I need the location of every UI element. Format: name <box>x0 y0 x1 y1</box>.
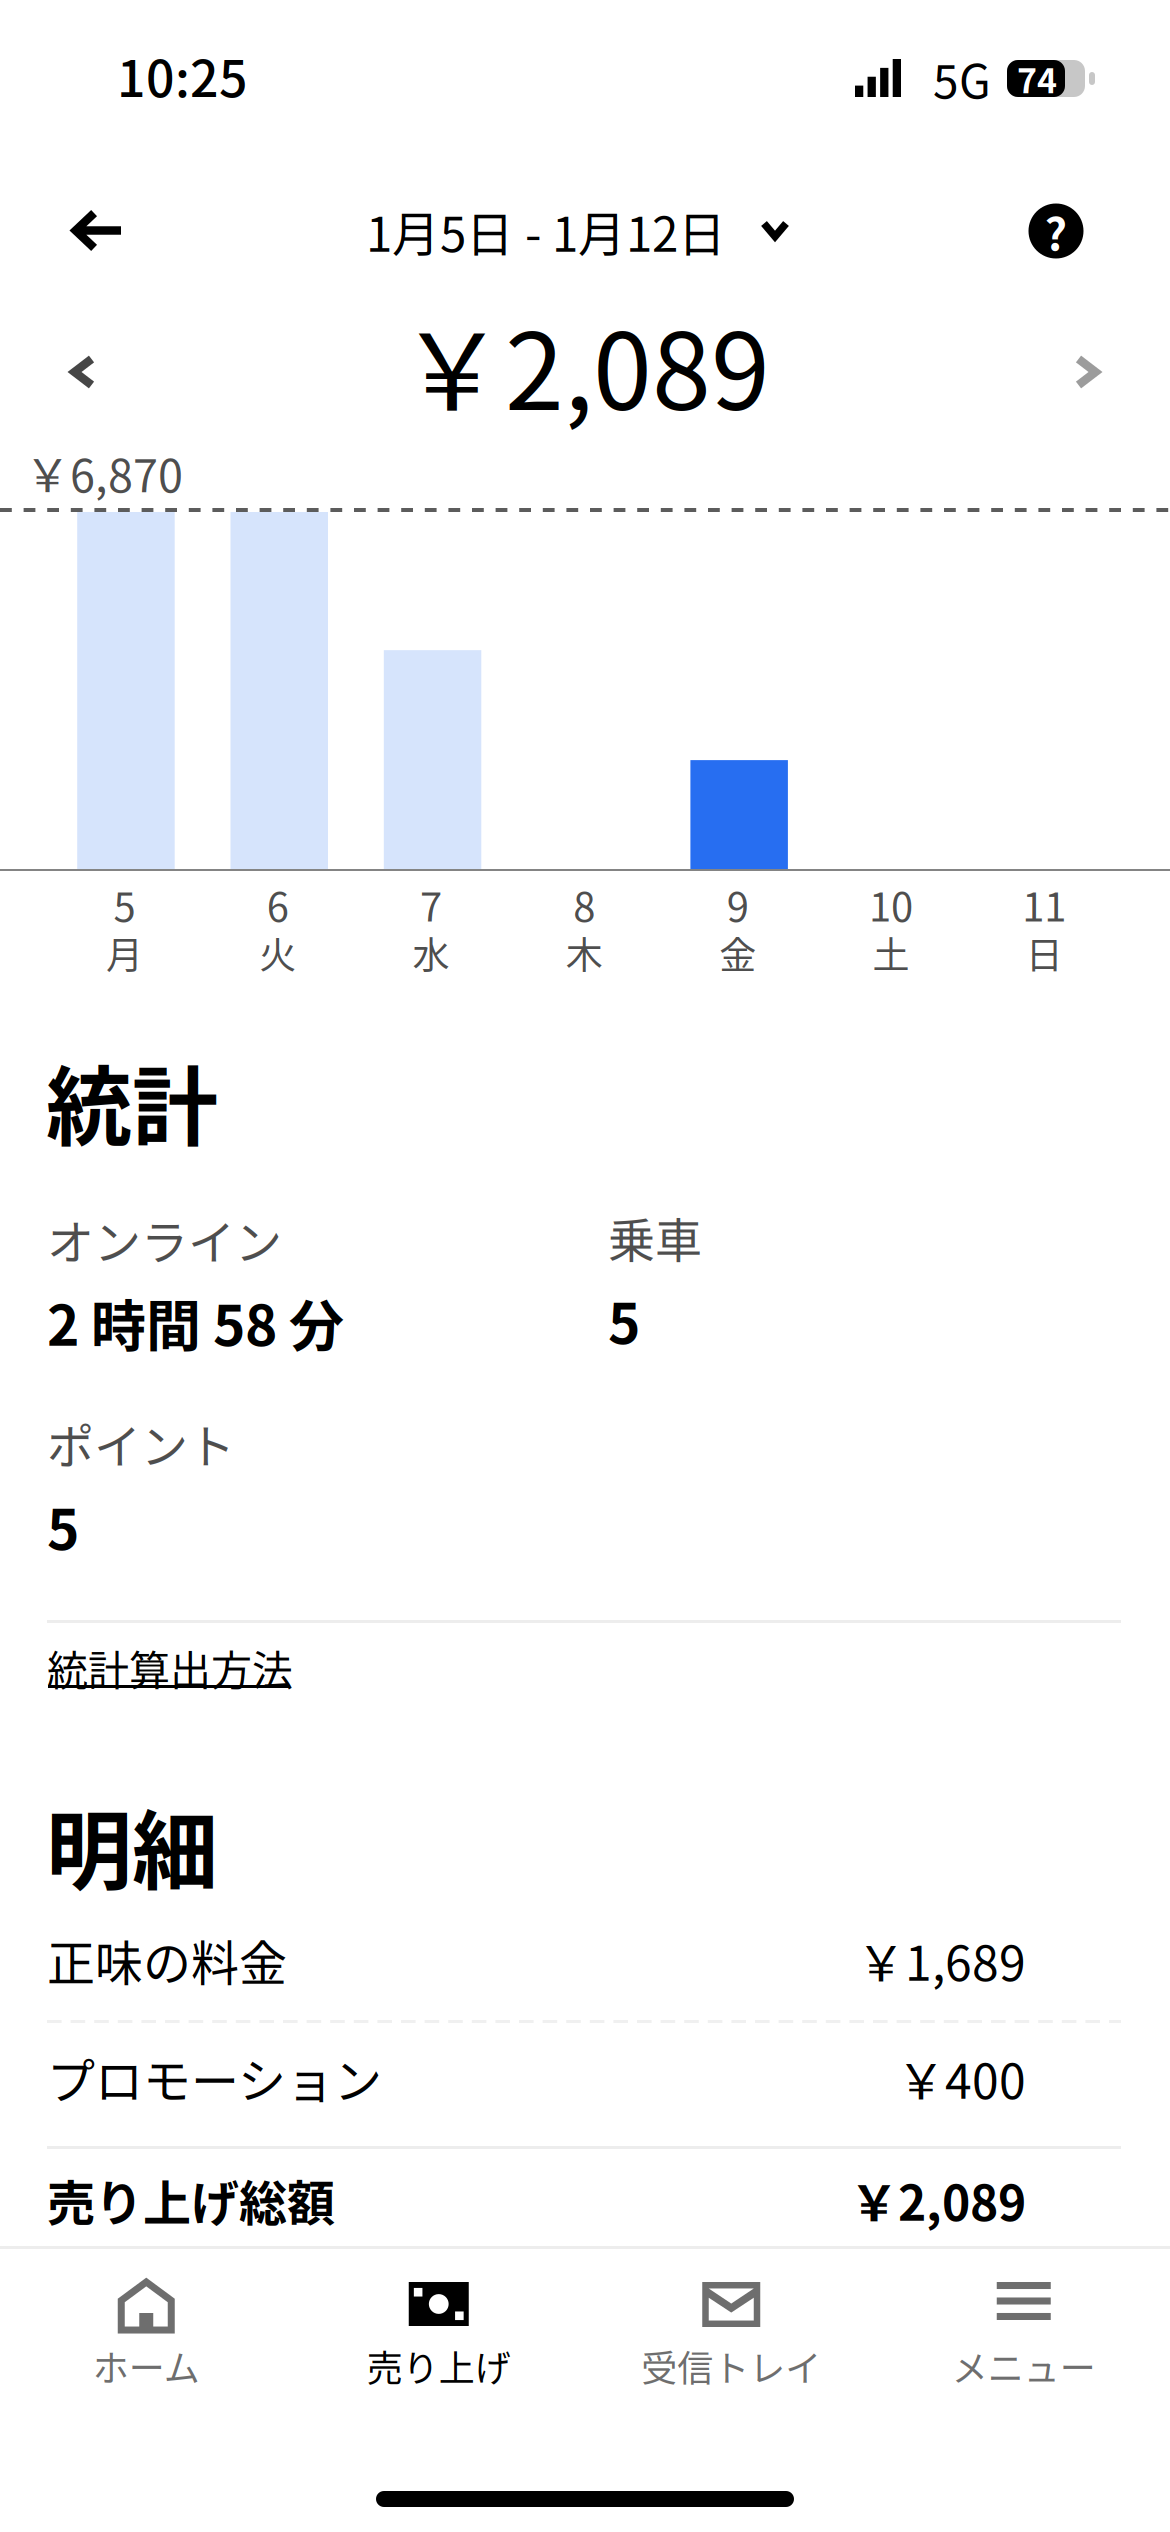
staticText: 6 <box>267 875 289 933</box>
staticText: 8 <box>573 875 595 933</box>
staticText: 日 <box>1026 926 1063 980</box>
staticText: 10:25 <box>117 39 248 111</box>
staticText: 土 <box>872 926 909 980</box>
staticText: ￥1,689 <box>857 1925 1026 1994</box>
staticText: 10 <box>869 875 913 933</box>
button[interactable]: Back <box>19 184 174 277</box>
staticText: 9 <box>727 875 749 933</box>
staticText: 統計 <box>46 1039 218 1163</box>
staticText: ポイント <box>47 1409 235 1477</box>
staticText: ? <box>1044 199 1067 263</box>
staticText: ￥2,089 <box>850 2165 1026 2234</box>
staticText: 正味の料金 <box>47 1925 287 1994</box>
staticText: 木 <box>566 926 603 980</box>
staticText: 月 <box>106 926 143 980</box>
staticText: 74 <box>1017 54 1057 103</box>
button[interactable]: 1月5日 - 1月12日 <box>328 185 828 277</box>
staticText: ホーム <box>93 2340 200 2392</box>
staticText: 1月5日 - 1月12日 <box>366 197 726 265</box>
button[interactable]: Previous week <box>27 325 139 419</box>
button[interactable]: ホーム <box>0 2252 292 2422</box>
staticText: 受信トレイ <box>641 2340 821 2392</box>
staticText: 7 <box>420 875 442 933</box>
staticText: メニュー <box>952 2340 1096 2392</box>
staticText: 5 <box>608 1280 640 1360</box>
button[interactable]: Help <box>992 185 1120 277</box>
staticText: 売り上げ総額 <box>47 2165 335 2234</box>
staticText: 5 <box>113 875 135 933</box>
staticText: 11 <box>1022 875 1066 933</box>
staticText: 明細 <box>46 1783 218 1907</box>
button[interactable]: Next week <box>1031 325 1143 419</box>
staticText: 5G <box>933 45 991 112</box>
staticText: 5 <box>47 1486 79 1566</box>
staticText: ￥2,089 <box>399 287 770 440</box>
staticText: 金 <box>719 926 756 980</box>
staticText: 2 時間 58 分 <box>47 1282 344 1362</box>
staticText: オンライン <box>47 1205 282 1273</box>
button[interactable]: 受信トレイ <box>585 2252 877 2422</box>
staticText: ￥400 <box>897 2043 1026 2112</box>
button[interactable]: メニュー <box>877 2252 1170 2422</box>
staticText: 火 <box>259 926 296 980</box>
staticText: 統計算出方法 <box>47 1638 293 1697</box>
staticText: 売り上げ <box>367 2340 511 2392</box>
staticText: ￥6,870 <box>25 440 183 505</box>
button[interactable]: 売り上げ <box>292 2252 585 2422</box>
staticText: 水 <box>413 926 450 980</box>
button[interactable]: 統計算出方法 <box>45 1623 345 1723</box>
staticText: プロモーション <box>47 2043 382 2112</box>
staticText: 乗車 <box>608 1203 702 1271</box>
